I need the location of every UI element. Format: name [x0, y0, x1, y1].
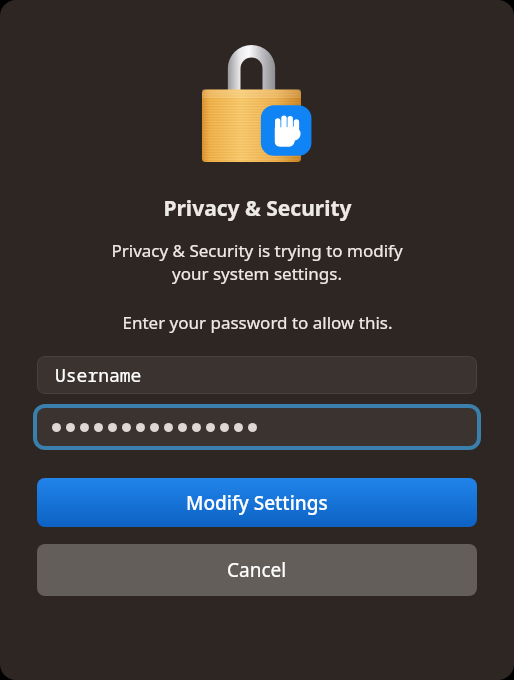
staticText: Modify Settings — [186, 490, 328, 516]
staticText: Privacy & Security is trying to modify y… — [24, 239, 490, 285]
staticText: Username — [55, 363, 142, 388]
staticText: Cancel — [227, 557, 287, 583]
button[interactable]: Password — [37, 408, 477, 446]
button[interactable]: Modify Settings — [37, 478, 477, 527]
button[interactable]: Cancel — [37, 544, 477, 596]
staticText: Enter your password to allow this. — [122, 311, 393, 334]
staticText: Privacy & Security — [163, 194, 352, 223]
button[interactable]: Username — [37, 356, 477, 394]
